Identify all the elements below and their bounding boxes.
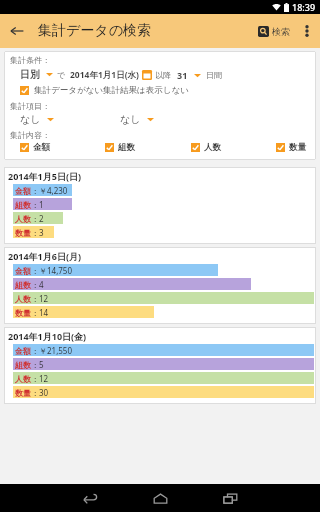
staticText: 金額 xyxy=(33,142,50,153)
button[interactable]: 2014年1月6日(月) xyxy=(4,247,316,324)
staticText: 人数 xyxy=(15,374,31,384)
staticText: 31 xyxy=(177,69,188,81)
staticText: 2014年1月6日(月) xyxy=(8,250,81,262)
button[interactable]: Back xyxy=(0,14,34,48)
staticText: 2014年1月5日(日) xyxy=(8,170,81,182)
button[interactable]: Recent apps xyxy=(195,484,265,512)
button[interactable]: 31 xyxy=(177,69,201,81)
staticText: で xyxy=(57,70,66,80)
button[interactable]: 人数 xyxy=(191,142,221,153)
staticText: ：￥14,750 xyxy=(31,265,73,276)
staticText: 組数 xyxy=(15,360,31,370)
staticText: 数量 xyxy=(15,388,31,398)
staticText: 金額 xyxy=(15,346,31,356)
button[interactable]: 金額 xyxy=(20,142,50,153)
staticText: ：12 xyxy=(31,293,49,304)
staticText: 組数 xyxy=(118,142,135,153)
button[interactable]: 検索 xyxy=(254,26,294,37)
staticText: 集計データがない集計結果は表示しない xyxy=(34,85,189,96)
staticText: ：￥21,550 xyxy=(31,345,73,356)
staticText: 集計条件： xyxy=(10,55,50,65)
button[interactable]: Home xyxy=(125,484,195,512)
staticText: 人数 xyxy=(15,214,31,224)
staticText: 金額 xyxy=(15,186,31,196)
button[interactable]: なし xyxy=(120,113,154,126)
button[interactable]: More options xyxy=(294,14,320,48)
button[interactable]: 数量 xyxy=(276,142,306,153)
staticText: 人数 xyxy=(204,142,221,153)
button[interactable]: 日別 xyxy=(20,68,53,81)
staticText: ：1 xyxy=(31,199,44,210)
button[interactable]: なし xyxy=(20,113,54,126)
staticText: 18:39 xyxy=(292,1,316,13)
staticText: 日間 xyxy=(206,70,222,80)
staticText: 数量 xyxy=(15,228,31,238)
button[interactable]: Back xyxy=(55,484,125,512)
staticText: ：4 xyxy=(31,279,44,290)
staticText: ：2 xyxy=(31,213,44,224)
staticText: 集計データの検索 xyxy=(38,22,254,40)
staticText: 2014年1月1日(水) xyxy=(70,69,139,81)
staticText: なし xyxy=(120,113,141,126)
staticText: 集計内容： xyxy=(10,130,50,140)
staticText: 組数 xyxy=(15,280,31,290)
staticText: なし xyxy=(20,113,41,126)
staticText: 検索 xyxy=(272,26,290,37)
staticText: ：3 xyxy=(31,227,44,238)
staticText: 数量 xyxy=(15,308,31,318)
button[interactable]: 集計データがない集計結果は表示しない xyxy=(20,85,189,96)
staticText: 集計項目： xyxy=(10,101,50,111)
staticText: 数量 xyxy=(289,142,306,153)
staticText: 2014年1月10日(金) xyxy=(8,330,87,342)
button[interactable]: 2014年1月10日(金) xyxy=(4,327,316,404)
staticText: 日別 xyxy=(20,68,40,81)
button[interactable]: 組数 xyxy=(105,142,135,153)
staticText: 人数 xyxy=(15,294,31,304)
staticText: ：5 xyxy=(31,359,44,370)
staticText: ：30 xyxy=(31,387,49,398)
staticText: 以降 xyxy=(155,70,171,80)
button[interactable]: 2014年1月5日(日) xyxy=(4,167,316,244)
staticText: ：12 xyxy=(31,373,49,384)
staticText: ：14 xyxy=(31,307,49,318)
staticText: 金額 xyxy=(15,266,31,276)
staticText: ：￥4,230 xyxy=(31,185,68,196)
staticText: 組数 xyxy=(15,200,31,210)
